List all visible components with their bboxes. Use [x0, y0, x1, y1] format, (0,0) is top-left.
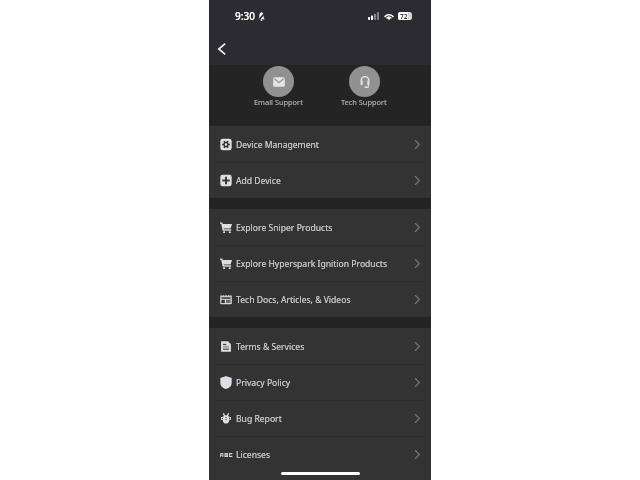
staticText: Tech Docs, Articles, & Videos — [236, 294, 351, 306]
staticText: Explore Hyperspark Ignition Products — [236, 258, 388, 270]
staticText: Bug Report — [236, 413, 282, 425]
button[interactable]: Email Support — [250, 65, 306, 112]
button[interactable]: Privacy Policy — [209, 364, 431, 400]
staticText: Device Management — [236, 139, 319, 151]
button[interactable]: Device Management — [209, 126, 431, 162]
staticText: Email Support — [254, 97, 303, 107]
button[interactable]: Tech Support — [336, 65, 392, 112]
button[interactable]: Bug Report — [209, 400, 431, 436]
staticText: Privacy Policy — [236, 377, 291, 389]
staticText: Add Device — [236, 175, 281, 187]
button[interactable]: Back — [210, 37, 234, 61]
button[interactable]: Terms & Services — [209, 328, 431, 364]
button[interactable]: Explore Hyperspark Ignition Products — [209, 245, 431, 281]
staticText: Licenses — [236, 449, 271, 461]
button[interactable]: Add Device — [209, 162, 431, 198]
staticText: Explore Sniper Products — [236, 222, 333, 234]
staticText: Terms & Services — [236, 341, 305, 353]
button[interactable]: Explore Sniper Products — [209, 209, 431, 245]
staticText: Tech Support — [341, 97, 387, 107]
staticText: 9:30 — [235, 9, 255, 23]
button[interactable]: Tech Docs, Articles, & Videos — [209, 281, 431, 317]
staticText: 72 — [400, 12, 408, 20]
button[interactable]: Licenses — [209, 436, 431, 472]
